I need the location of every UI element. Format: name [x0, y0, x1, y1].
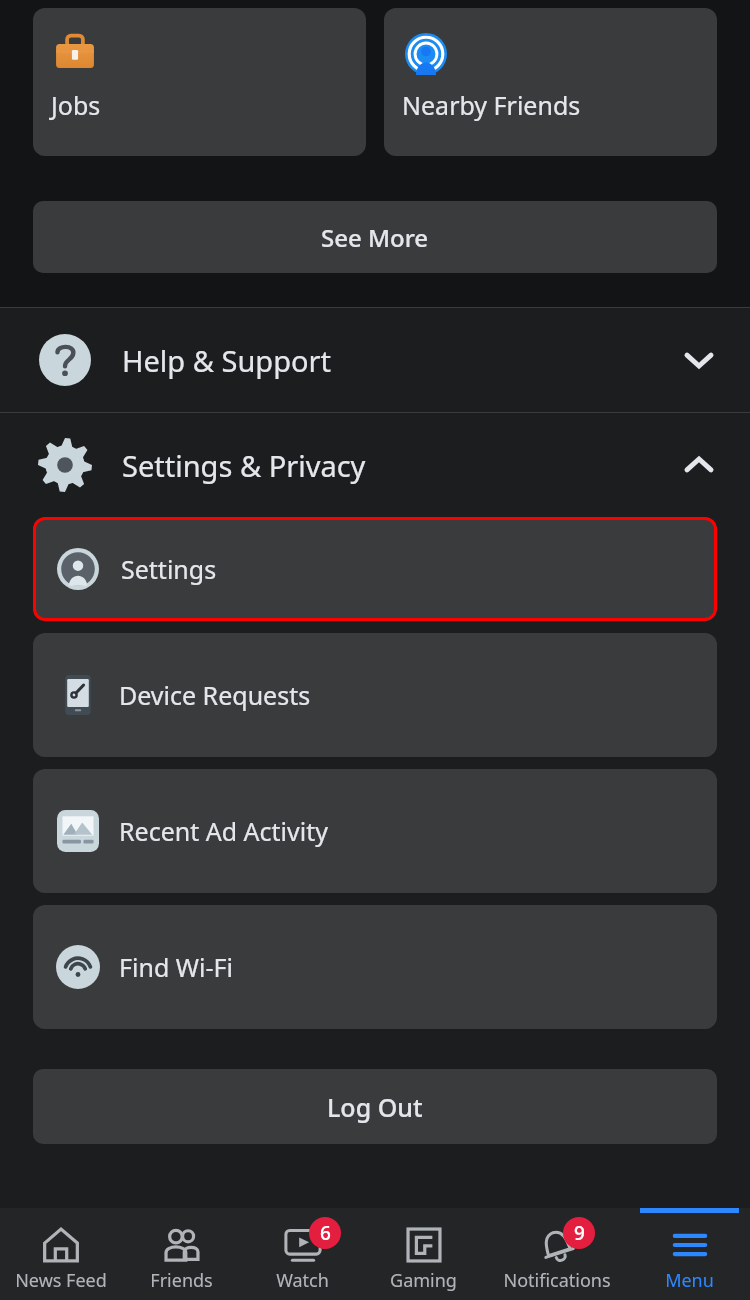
button[interactable]: Friends	[121, 1208, 242, 1300]
staticText: Friends	[150, 1268, 213, 1293]
button[interactable]: Nearby Friends	[384, 8, 717, 156]
button[interactable]: Menu	[629, 1208, 750, 1300]
staticText: Settings	[121, 552, 217, 586]
button[interactable]: Settings & Privacy	[0, 413, 750, 517]
staticText: Device Requests	[119, 678, 311, 712]
staticText: Help & Support	[122, 341, 331, 380]
staticText: See More	[321, 221, 429, 254]
staticText: Jobs	[51, 88, 101, 122]
staticText: Menu	[665, 1268, 714, 1293]
staticText: Watch	[276, 1268, 329, 1293]
staticText: 9	[574, 1220, 585, 1246]
staticText: Log Out	[327, 1090, 423, 1124]
button[interactable]: Settings	[33, 517, 717, 621]
staticText: Settings & Privacy	[122, 446, 366, 485]
staticText: Nearby Friends	[402, 88, 581, 122]
staticText: 6	[320, 1220, 331, 1246]
staticText: News Feed	[15, 1268, 107, 1293]
button[interactable]: Help & Support	[0, 308, 750, 412]
button[interactable]: News Feed	[0, 1208, 121, 1300]
staticText: Notifications	[503, 1268, 611, 1293]
button[interactable]: Gaming	[363, 1208, 484, 1300]
button[interactable]: Notifications	[484, 1208, 629, 1300]
button[interactable]: See More	[33, 201, 717, 273]
button[interactable]: Watch	[242, 1208, 363, 1300]
staticText: Recent Ad Activity	[119, 814, 328, 848]
staticText: Find Wi-Fi	[119, 950, 233, 984]
button[interactable]: Device Requests	[33, 633, 717, 757]
button[interactable]: Recent Ad Activity	[33, 769, 717, 893]
button[interactable]: Find Wi-Fi	[33, 905, 717, 1029]
staticText: Gaming	[390, 1268, 457, 1293]
button[interactable]: Log Out	[33, 1069, 717, 1144]
button[interactable]: Jobs	[33, 8, 366, 156]
